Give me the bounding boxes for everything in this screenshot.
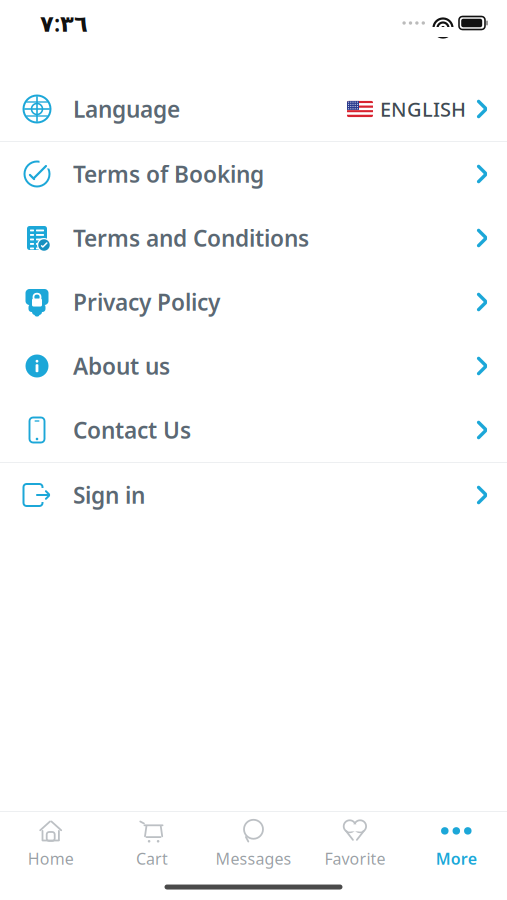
button[interactable]: More: [406, 811, 507, 875]
staticText: Terms and Conditions: [73, 223, 309, 253]
staticText: About us: [73, 351, 170, 381]
staticText: Home: [28, 848, 74, 869]
staticText: Messages: [215, 848, 291, 869]
staticText: Sign in: [73, 480, 145, 510]
button[interactable]: Contact Us: [0, 398, 507, 462]
staticText: Language: [73, 94, 180, 124]
staticText: Cart: [136, 848, 168, 869]
button[interactable]: Terms and Conditions: [0, 206, 507, 270]
staticText: Terms of Booking: [73, 159, 264, 189]
staticText: ٧:٣٦: [40, 8, 88, 38]
button[interactable]: Language: [0, 77, 507, 141]
staticText: Favorite: [324, 848, 385, 869]
button[interactable]: Sign in: [0, 463, 507, 527]
button[interactable]: About us: [0, 334, 507, 398]
staticText: Privacy Policy: [73, 287, 220, 317]
staticText: Contact Us: [73, 415, 191, 445]
button[interactable]: Home: [0, 811, 101, 875]
button[interactable]: Cart: [101, 811, 203, 875]
button[interactable]: Messages: [203, 811, 304, 875]
button[interactable]: Terms of Booking: [0, 142, 507, 206]
staticText: More: [436, 848, 477, 869]
button[interactable]: Favorite: [304, 811, 406, 875]
button[interactable]: Privacy Policy: [0, 270, 507, 334]
staticText: ENGLISH: [380, 96, 466, 122]
